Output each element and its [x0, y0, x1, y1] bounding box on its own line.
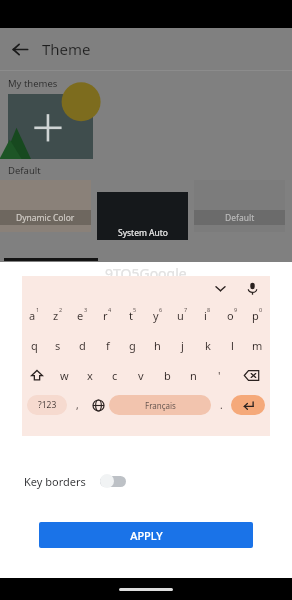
staticText: 1: [36, 306, 40, 313]
button[interactable]: f: [95, 330, 120, 360]
button[interactable]: Voice input: [242, 278, 262, 298]
staticText: r: [103, 308, 108, 323]
button[interactable]: r: [95, 300, 120, 330]
button[interactable]: ,: [67, 390, 87, 420]
button[interactable]: w: [52, 360, 77, 390]
button[interactable]: i: [195, 300, 220, 330]
staticText: ': [218, 368, 221, 383]
button[interactable]: y: [145, 300, 170, 330]
staticText: 9TO5Google: [105, 264, 187, 283]
staticText: 9: [234, 306, 238, 313]
staticText: y: [153, 308, 159, 323]
staticText: n: [190, 368, 197, 383]
staticText: a: [29, 308, 36, 323]
button[interactable]: t: [120, 300, 145, 330]
staticText: 0: [259, 306, 263, 313]
staticText: p: [252, 308, 259, 323]
staticText: w: [60, 368, 69, 383]
button[interactable]: Change language: [87, 390, 109, 420]
staticText: i: [204, 308, 207, 323]
staticText: Dynamic Color: [16, 212, 75, 224]
staticText: .: [220, 398, 223, 412]
button[interactable]: k: [195, 330, 220, 360]
button[interactable]: p: [245, 300, 270, 330]
staticText: z: [53, 308, 59, 323]
button[interactable]: Shift: [22, 360, 52, 390]
button[interactable]: n: [180, 360, 206, 390]
button[interactable]: System Auto: [97, 192, 188, 240]
button[interactable]: m: [245, 330, 270, 360]
button[interactable]: q: [22, 330, 46, 360]
staticText: e: [77, 308, 84, 323]
staticText: u: [177, 308, 184, 323]
button[interactable]: d: [70, 330, 95, 360]
staticText: d: [79, 338, 86, 353]
staticText: t: [129, 308, 133, 323]
staticText: Français: [145, 400, 176, 411]
button[interactable]: z: [46, 300, 70, 330]
staticText: l: [231, 338, 234, 353]
staticText: Default: [225, 212, 255, 224]
button[interactable]: g: [120, 330, 145, 360]
button[interactable]: Français: [109, 395, 211, 415]
button[interactable]: b: [154, 360, 180, 390]
staticText: System Auto: [118, 227, 168, 239]
staticText: b: [164, 368, 171, 383]
button[interactable]: u: [170, 300, 195, 330]
staticText: j: [181, 338, 184, 353]
staticText: f: [106, 338, 110, 353]
button[interactable]: Enter: [231, 395, 265, 415]
button[interactable]: h: [145, 330, 170, 360]
button[interactable]: e: [70, 300, 95, 330]
button[interactable]: Expand: [210, 278, 230, 298]
button[interactable]: ': [206, 360, 232, 390]
button[interactable]: l: [220, 330, 245, 360]
staticText: 5: [133, 306, 137, 313]
button[interactable]: Backspace: [232, 360, 270, 390]
staticText: My themes: [8, 77, 58, 90]
staticText: Default: [8, 164, 41, 177]
button[interactable]: o: [220, 300, 245, 330]
button[interactable]: v: [128, 360, 154, 390]
button[interactable]: .: [211, 390, 231, 420]
button[interactable]: Back: [0, 29, 40, 69]
staticText: 6: [159, 306, 163, 313]
button[interactable]: c: [102, 360, 128, 390]
staticText: ?123: [38, 399, 57, 411]
staticText: c: [112, 368, 118, 383]
button[interactable]: APPLY: [39, 522, 253, 548]
button[interactable]: Dynamic Color: [0, 180, 91, 232]
staticText: q: [31, 338, 38, 353]
button[interactable]: Add theme: [8, 94, 93, 159]
staticText: 8: [207, 306, 211, 313]
staticText: s: [55, 338, 61, 353]
button[interactable]: x: [77, 360, 102, 390]
staticText: h: [154, 338, 161, 353]
staticText: APPLY: [130, 528, 163, 543]
staticText: 4: [108, 306, 112, 313]
button[interactable]: Default: [194, 180, 285, 232]
staticText: v: [138, 368, 144, 383]
staticText: o: [227, 308, 234, 323]
button[interactable]: a: [22, 300, 46, 330]
staticText: k: [205, 338, 211, 353]
staticText: x: [87, 368, 93, 383]
staticText: m: [252, 338, 263, 353]
staticText: Theme: [42, 39, 91, 59]
staticText: g: [129, 338, 136, 353]
button[interactable]: ?123: [27, 395, 67, 415]
button[interactable]: s: [46, 330, 70, 360]
staticText: 2: [59, 306, 63, 313]
button[interactable]: j: [170, 330, 195, 360]
staticText: ,: [76, 398, 79, 412]
staticText: 7: [184, 306, 188, 313]
staticText: Key borders: [24, 474, 86, 489]
staticText: 3: [84, 306, 88, 313]
button[interactable]: [100, 474, 126, 488]
